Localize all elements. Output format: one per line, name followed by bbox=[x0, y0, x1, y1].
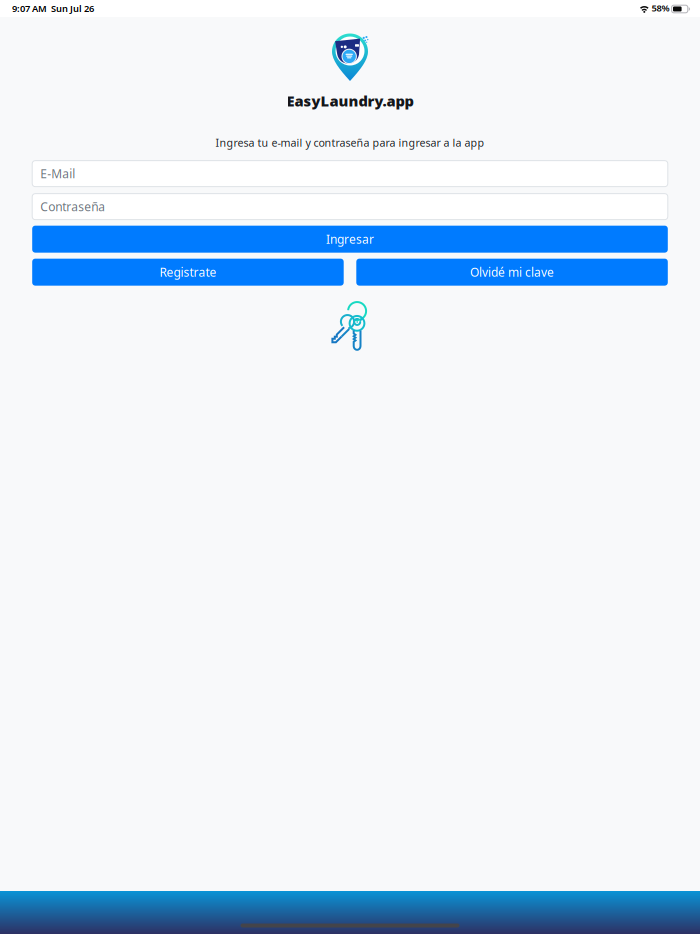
button[interactable]: Olvidé mi clave bbox=[356, 259, 668, 286]
staticText: 9:07 AM bbox=[12, 2, 47, 15]
staticText: 58% bbox=[650, 2, 670, 14]
button[interactable]: E-Mail bbox=[32, 161, 668, 187]
button[interactable]: Ingresar bbox=[32, 226, 668, 253]
staticText: Sun Jul 26 bbox=[51, 2, 94, 15]
staticText: Ingresa tu e-mail y contraseña para ingr… bbox=[215, 135, 484, 150]
button[interactable]: Registrate bbox=[32, 259, 344, 286]
staticText: E-Mail bbox=[40, 166, 75, 182]
staticText: Contraseña bbox=[40, 199, 105, 215]
staticText: EasyLaundry.app bbox=[286, 91, 413, 110]
staticText: Registrate bbox=[159, 264, 216, 280]
staticText: Ingresar bbox=[326, 231, 374, 247]
staticText: Olvidé mi clave bbox=[470, 264, 554, 280]
button[interactable]: Contraseña bbox=[32, 194, 668, 220]
